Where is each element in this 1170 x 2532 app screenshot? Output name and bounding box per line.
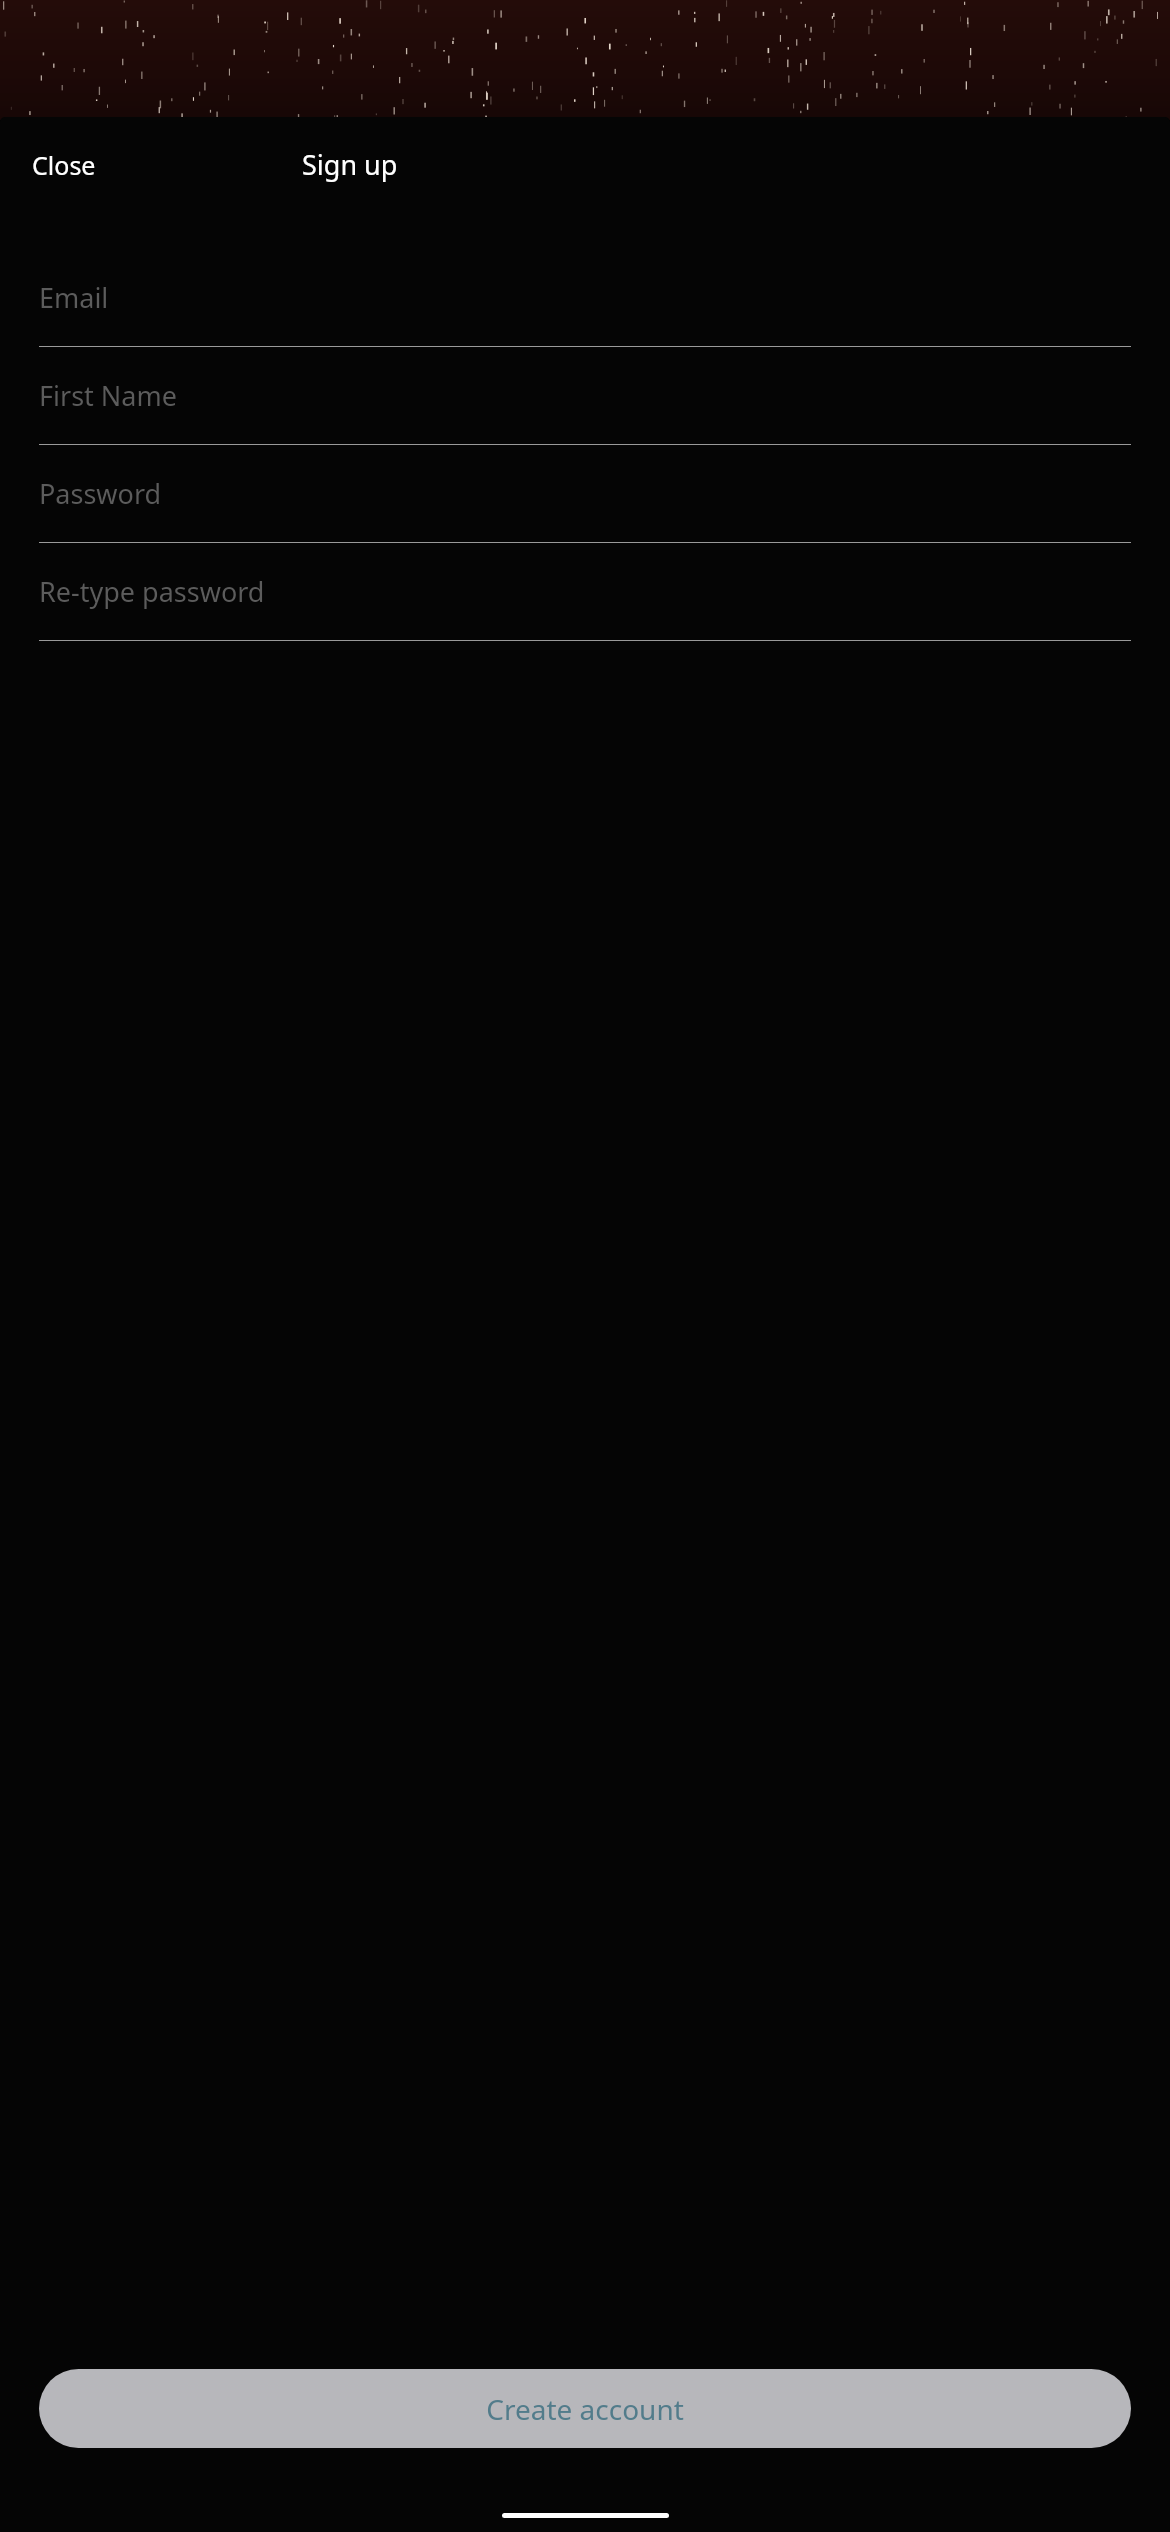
button[interactable]: Create account [39,2369,1131,2448]
staticText: Sign up [302,146,398,183]
staticText: First Name [39,377,177,414]
button[interactable]: Re-type password [39,568,1131,641]
button[interactable]: Email [39,274,1131,347]
staticText: Re-type password [39,573,265,610]
staticText: Email [39,279,109,316]
button[interactable]: Password [39,470,1131,543]
button[interactable]: First Name [39,372,1131,445]
staticText: Create account [486,2390,684,2428]
button[interactable]: Close [14,138,114,192]
staticText: Password [39,475,162,512]
staticText: Close [32,148,96,182]
